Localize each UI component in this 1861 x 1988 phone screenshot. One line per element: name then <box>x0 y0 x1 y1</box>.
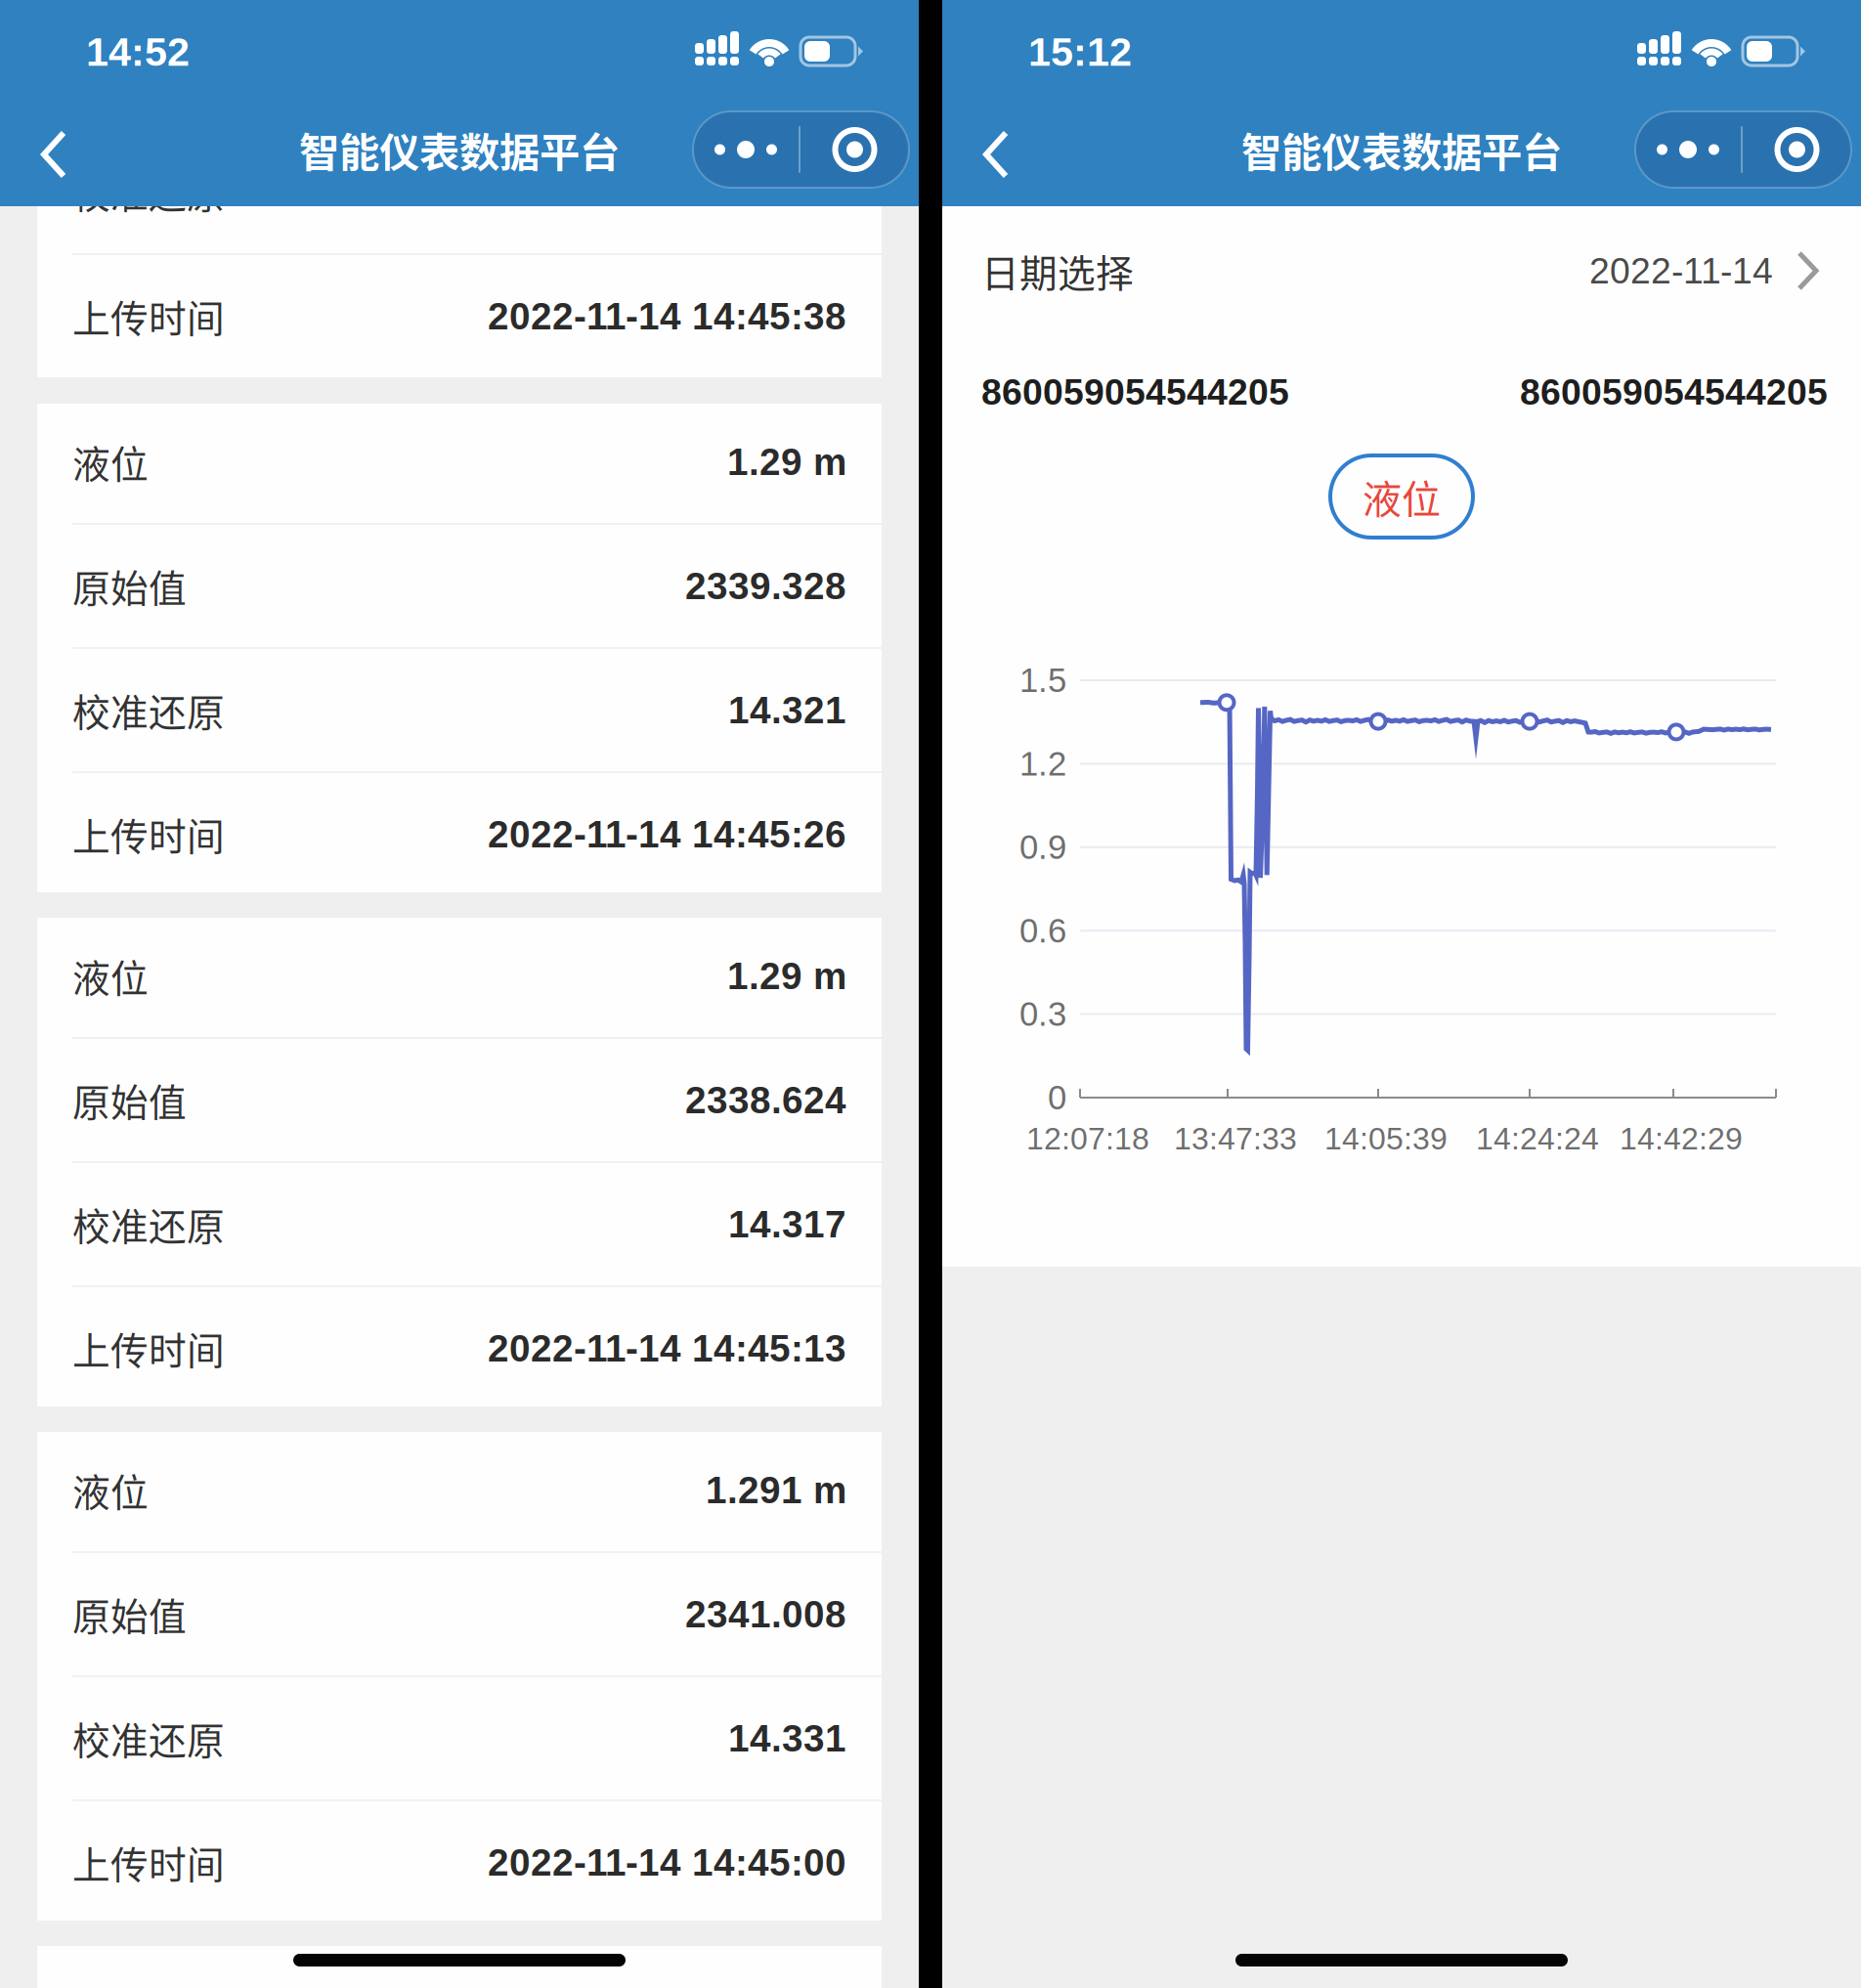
button[interactable]: 日期选择 <box>942 210 1861 331</box>
staticText: 智能仪表数据平台 <box>1241 120 1562 179</box>
staticText: 0.9 <box>1019 828 1066 866</box>
button[interactable]: 原始值 <box>37 1553 882 1675</box>
staticText: 校准还原 <box>72 1711 225 1766</box>
button[interactable]: 校准还原 <box>37 131 882 253</box>
staticText: 2022-11-14 14:45:38 <box>488 295 846 337</box>
staticText: 液位 <box>1363 468 1441 525</box>
staticText: 校准还原 <box>72 683 225 737</box>
staticText: 1.29 m <box>727 441 846 483</box>
staticText: 日期选择 <box>981 243 1134 298</box>
staticText: 液位 <box>72 949 149 1003</box>
button[interactable]: 校准还原 <box>37 1677 882 1799</box>
staticText: 0.6 <box>1019 912 1066 950</box>
staticText: 15:12 <box>1028 29 1132 74</box>
staticText: 原始值 <box>72 1073 187 1127</box>
staticText: 14:05:39 <box>1324 1121 1448 1156</box>
button[interactable]: Back <box>958 98 1034 211</box>
staticText: 14.321 <box>728 689 846 731</box>
staticText: 2022-11-14 14:45:13 <box>488 1327 846 1369</box>
staticText: 14:24:24 <box>1476 1121 1599 1156</box>
staticText: 2022-11-14 14:45:26 <box>488 813 846 855</box>
button[interactable]: 液位 <box>1330 455 1473 538</box>
staticText: 上传时间 <box>72 807 225 862</box>
staticText: 智能仪表数据平台 <box>299 120 620 179</box>
button[interactable]: 上传时间 <box>37 1801 882 1923</box>
button[interactable]: 上传时间 <box>37 773 882 895</box>
staticText: 13:47:33 <box>1174 1121 1297 1156</box>
staticText: 14.331 <box>728 1717 846 1759</box>
staticText: 上传时间 <box>72 289 225 344</box>
staticText: 液位 <box>72 1463 149 1517</box>
staticText: 12:07:18 <box>1026 1121 1149 1156</box>
staticText: 原始值 <box>72 1587 187 1642</box>
staticText: 校准还原 <box>72 1197 225 1252</box>
staticText: 2022-11-14 14:45:00 <box>488 1841 846 1884</box>
staticText: 上传时间 <box>72 1321 225 1376</box>
button[interactable]: 液位 <box>37 1429 882 1551</box>
button[interactable]: 原始值 <box>37 525 882 647</box>
button[interactable]: Close <box>1743 111 1851 188</box>
staticText: 2338.624 <box>685 1079 846 1121</box>
staticText: 14.325 <box>728 171 846 213</box>
staticText: 上传时间 <box>72 1835 225 1890</box>
button[interactable]: More <box>693 111 799 188</box>
staticText: 14:42:29 <box>1620 1121 1743 1156</box>
staticText: 液位 <box>72 434 149 489</box>
staticText: 860059054544205 <box>1520 372 1828 412</box>
staticText: 1.291 m <box>706 1469 846 1511</box>
staticText: 860059054544205 <box>981 372 1289 412</box>
button[interactable]: More <box>1635 111 1741 188</box>
staticText: 2339.328 <box>685 565 846 607</box>
button[interactable]: 液位 <box>37 915 882 1037</box>
button[interactable]: Back <box>16 98 92 211</box>
staticText: 校准还原 <box>72 165 225 219</box>
staticText: 2341.008 <box>685 1593 846 1635</box>
staticText: 14:52 <box>86 29 190 74</box>
button[interactable]: 原始值 <box>37 1039 882 1161</box>
staticText: 0.3 <box>1019 995 1066 1033</box>
button[interactable]: 上传时间 <box>37 255 882 377</box>
button[interactable]: 校准还原 <box>37 1163 882 1285</box>
button[interactable]: 校准还原 <box>37 649 882 771</box>
staticText: 2022-11-14 <box>1589 250 1773 291</box>
staticText: 原始值 <box>72 559 187 613</box>
button[interactable]: 液位 <box>37 401 882 523</box>
staticText: 1.5 <box>1019 661 1066 699</box>
staticText: 0 <box>1048 1079 1066 1116</box>
button[interactable]: 上传时间 <box>37 1287 882 1409</box>
button[interactable]: Close <box>801 111 909 188</box>
staticText: 1.2 <box>1019 745 1066 783</box>
staticText: 14.317 <box>728 1203 846 1245</box>
staticText: 1.29 m <box>727 955 846 997</box>
